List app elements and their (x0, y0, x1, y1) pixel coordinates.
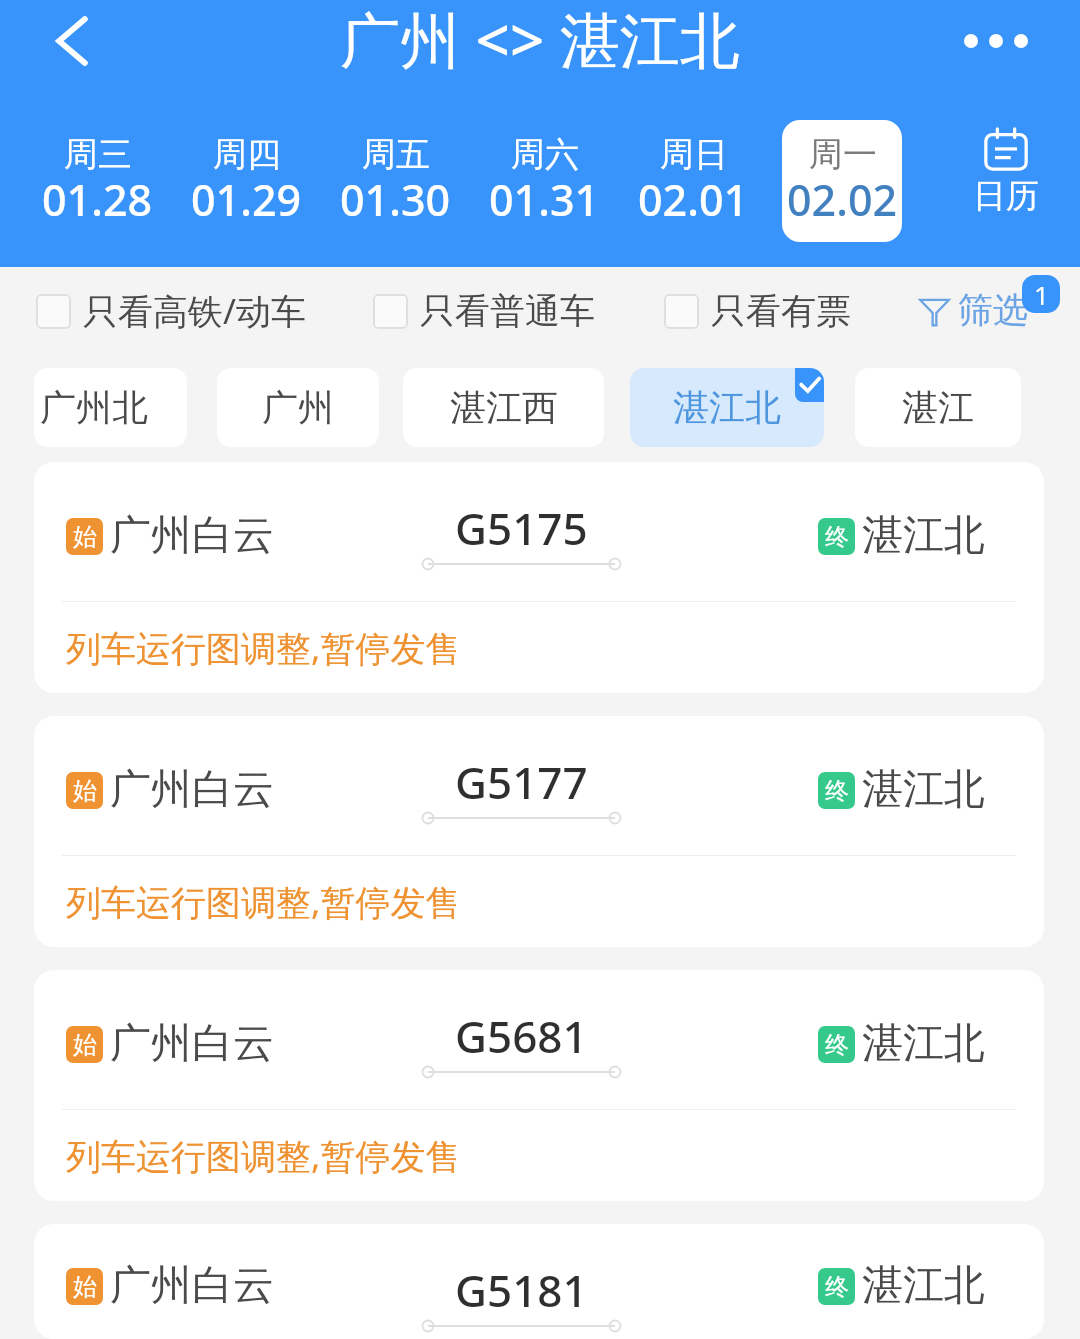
button[interactable]: 始 (34, 970, 1044, 1201)
staticText: 终 (825, 1272, 849, 1302)
staticText: 01.28 (42, 170, 153, 229)
staticText: 01.31 (489, 170, 600, 229)
button[interactable]: 湛江 (855, 368, 1021, 447)
staticText: 周五 (362, 133, 430, 176)
button[interactable]: 广州 (217, 368, 379, 447)
staticText: 列车运行图调整,暂停发售 (66, 624, 461, 672)
button[interactable]: 湛江北 (630, 368, 824, 447)
staticText: 广州 <> 湛江北 (340, 0, 740, 80)
staticText: 周六 (511, 133, 579, 176)
button[interactable]: 周四 (186, 120, 306, 242)
button[interactable]: 周日 (633, 120, 753, 242)
staticText: 始 (73, 1272, 97, 1302)
staticText: 周一 (809, 133, 877, 176)
button[interactable]: 只看普通车 (373, 289, 595, 333)
staticText: 终 (825, 776, 849, 806)
staticText: 始 (73, 522, 97, 552)
staticText: G5181 (455, 1260, 588, 1320)
button[interactable]: More options (952, 0, 1040, 85)
staticText: 筛选 (958, 288, 1028, 332)
staticText: 日历 (973, 175, 1039, 217)
button[interactable]: 始 (34, 1224, 1044, 1339)
staticText: 广州北 (40, 385, 148, 430)
button[interactable]: 周六 (484, 120, 604, 242)
staticText: 终 (825, 1030, 849, 1060)
staticText: 只看高铁/动车 (83, 287, 307, 335)
button[interactable]: 只看有票 (664, 289, 851, 333)
staticText: 广州 (262, 385, 334, 430)
staticText: 湛江西 (450, 385, 558, 430)
button[interactable]: 始 (34, 462, 1044, 693)
staticText: 广州白云 (110, 510, 274, 562)
button[interactable]: Back (28, 0, 116, 85)
staticText: 湛江北 (862, 1260, 985, 1312)
staticText: 列车运行图调整,暂停发售 (66, 1132, 461, 1180)
staticText: 广州白云 (110, 764, 274, 816)
staticText: 终 (825, 522, 849, 552)
staticText: 湛江北 (862, 510, 985, 562)
staticText: 湛江 (902, 385, 974, 430)
staticText: 周日 (660, 133, 728, 176)
button[interactable]: 广州北 (34, 368, 187, 447)
button[interactable]: 周三 (37, 120, 157, 242)
button[interactable]: 周五 (335, 120, 455, 242)
staticText: 周三 (64, 133, 132, 176)
button[interactable]: Calendar (942, 124, 1070, 238)
staticText: 湛江北 (862, 764, 985, 816)
staticText: 只看普通车 (420, 289, 595, 333)
staticText: 周四 (213, 133, 281, 176)
button[interactable]: 只看高铁/动车 (36, 287, 307, 335)
staticText: 01.30 (340, 170, 451, 229)
staticText: G5177 (455, 752, 588, 812)
staticText: 1 (1034, 277, 1049, 312)
staticText: G5681 (455, 1006, 588, 1066)
staticText: 02.02 (787, 170, 898, 229)
button[interactable]: 始 (34, 716, 1044, 947)
staticText: 始 (73, 1030, 97, 1060)
staticText: G5175 (455, 498, 588, 558)
staticText: 02.01 (638, 170, 749, 229)
staticText: 01.29 (191, 170, 302, 229)
staticText: 湛江北 (862, 1018, 985, 1070)
staticText: 广州白云 (110, 1260, 274, 1312)
button[interactable]: 筛选 (919, 288, 1028, 332)
button[interactable]: 周一 (782, 120, 902, 242)
staticText: 广州白云 (110, 1018, 274, 1070)
staticText: 只看有票 (711, 289, 851, 333)
staticText: 列车运行图调整,暂停发售 (66, 878, 461, 926)
button[interactable]: 湛江西 (403, 368, 604, 447)
staticText: 始 (73, 776, 97, 806)
staticText: 湛江北 (673, 385, 781, 430)
